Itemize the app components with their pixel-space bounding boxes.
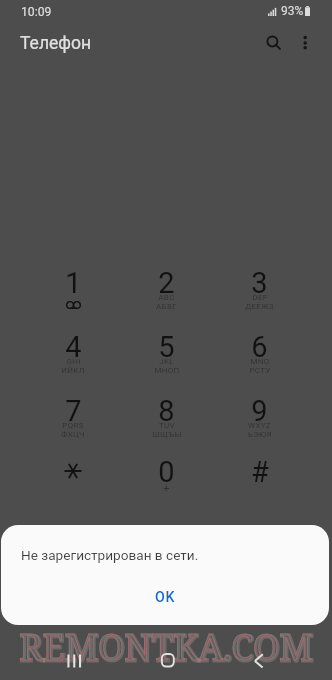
staticText: Не зарегистрирован в сети. bbox=[21, 547, 199, 563]
staticText: MNO bbox=[250, 357, 270, 366]
button[interactable]: 0 bbox=[120, 451, 213, 515]
staticText: + bbox=[163, 482, 170, 495]
staticText: DEF bbox=[252, 293, 268, 302]
button[interactable]: OK bbox=[141, 585, 190, 610]
staticText: 9 bbox=[251, 394, 268, 428]
staticText: ЬЭЮЯ bbox=[248, 430, 272, 439]
staticText: РСТУ bbox=[249, 366, 271, 375]
staticText: # bbox=[251, 455, 269, 489]
button[interactable]: 6 bbox=[213, 326, 306, 390]
button[interactable]: 7 bbox=[26, 390, 120, 451]
button[interactable]: 8 bbox=[120, 390, 213, 451]
staticText: REMONTKA.COM bbox=[20, 623, 314, 671]
button[interactable]: More options bbox=[289, 18, 322, 51]
button[interactable]: Back bbox=[238, 640, 282, 680]
staticText: GHI bbox=[66, 357, 81, 366]
button[interactable]: 5 bbox=[120, 326, 213, 390]
staticText: ABC bbox=[158, 293, 175, 302]
staticText: OK bbox=[155, 589, 176, 606]
staticText: ФХЦЧ bbox=[61, 430, 85, 439]
staticText: АБВГ bbox=[156, 302, 177, 311]
staticText: 4 bbox=[65, 330, 82, 364]
button[interactable]: Home bbox=[145, 640, 189, 680]
button[interactable]: 2 bbox=[120, 262, 213, 326]
staticText: 7 bbox=[65, 394, 82, 428]
button[interactable]: Search bbox=[256, 18, 289, 51]
button[interactable]: # bbox=[213, 451, 306, 515]
button[interactable]: 9 bbox=[213, 390, 306, 451]
staticText: 1 bbox=[65, 266, 82, 300]
staticText: 0 bbox=[158, 455, 175, 489]
staticText: PQRS bbox=[62, 421, 84, 430]
button[interactable]: Recent apps bbox=[52, 640, 96, 680]
staticText: 5 bbox=[158, 330, 175, 364]
staticText: 10:09 bbox=[21, 5, 52, 19]
button[interactable]: 3 bbox=[213, 262, 306, 326]
staticText: WXYZ bbox=[248, 421, 271, 430]
staticText: МНОП bbox=[154, 366, 180, 375]
staticText: TUV bbox=[159, 421, 175, 430]
staticText: 8 bbox=[158, 394, 175, 428]
button[interactable] bbox=[26, 451, 120, 515]
staticText: REMONTKA.COM bbox=[19, 622, 313, 670]
button[interactable]: 1 bbox=[26, 262, 120, 326]
staticText: 2 bbox=[158, 266, 175, 300]
button[interactable]: 4 bbox=[26, 326, 120, 390]
staticText: ДЕЁЖЗ bbox=[245, 302, 274, 311]
staticText: Телефон bbox=[20, 33, 92, 54]
staticText: ШЩЪЫ bbox=[152, 430, 182, 439]
staticText: 6 bbox=[251, 330, 268, 364]
staticText: JKL bbox=[159, 357, 174, 366]
staticText: 3 bbox=[251, 266, 268, 300]
staticText: ИЙКЛ bbox=[61, 366, 85, 375]
staticText: 93% bbox=[281, 4, 304, 18]
